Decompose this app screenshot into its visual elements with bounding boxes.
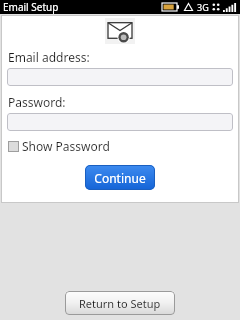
staticText: 3G bbox=[197, 1, 209, 13]
other: Email account bbox=[105, 18, 135, 44]
staticText: Continue bbox=[94, 170, 146, 186]
staticText: Email Setup bbox=[3, 0, 59, 14]
button[interactable]: Continue bbox=[85, 165, 155, 190]
button[interactable] bbox=[7, 113, 233, 131]
staticText: Show Password bbox=[22, 138, 110, 154]
button[interactable] bbox=[7, 68, 233, 86]
staticText: Return to Setup bbox=[79, 296, 161, 311]
button[interactable]: Return to Setup bbox=[65, 291, 175, 315]
staticText: Password: bbox=[8, 94, 66, 110]
button[interactable]: Show Password bbox=[8, 138, 110, 154]
staticText: Email address: bbox=[8, 49, 90, 65]
